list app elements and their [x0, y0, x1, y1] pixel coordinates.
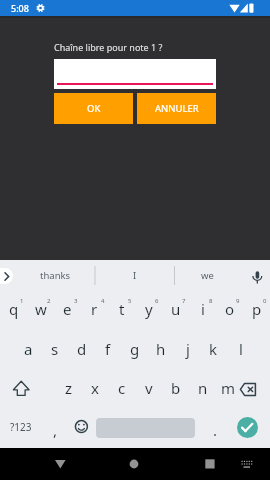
button[interactable]	[0, 268, 13, 284]
button[interactable]: w	[27, 290, 54, 328]
staticText: o	[225, 299, 235, 319]
staticText: z	[65, 378, 73, 398]
staticText: w	[35, 299, 47, 319]
button[interactable]: I	[120, 266, 149, 285]
button[interactable]: g	[121, 330, 148, 368]
staticText: a	[24, 339, 33, 359]
button[interactable]	[48, 452, 73, 476]
button[interactable]: k	[200, 330, 227, 368]
button[interactable]: v	[135, 369, 162, 407]
staticText: j	[186, 339, 190, 359]
button[interactable]: we	[192, 266, 222, 285]
button[interactable]: ANNULER	[137, 93, 216, 124]
staticText: i	[201, 299, 205, 319]
staticText: c	[118, 378, 126, 398]
staticText: .	[213, 420, 218, 438]
staticText: ?123	[10, 420, 32, 434]
button[interactable]: e	[54, 290, 81, 328]
staticText: Chaîne libre pour note 1 ?	[54, 41, 163, 53]
button[interactable]: a	[15, 330, 42, 368]
staticText: 4	[101, 297, 105, 305]
staticText: l	[239, 339, 243, 359]
staticText: d	[77, 339, 87, 359]
button[interactable]: p	[243, 290, 270, 328]
staticText: r	[91, 299, 98, 319]
staticText: OK	[87, 102, 101, 115]
button[interactable]	[122, 452, 147, 476]
button[interactable]: OK	[54, 93, 133, 124]
button[interactable]: u	[162, 290, 189, 328]
button[interactable]: m	[215, 369, 242, 407]
staticText: ,	[53, 420, 58, 438]
button[interactable]: r	[81, 290, 108, 328]
staticText: 7	[182, 297, 186, 305]
button[interactable]: i	[189, 290, 216, 328]
staticText: 3	[74, 297, 78, 305]
staticText: 0	[263, 297, 267, 305]
staticText: I	[133, 269, 137, 282]
button[interactable]: l	[227, 330, 254, 368]
button[interactable]: x	[81, 369, 108, 407]
staticText: 5:08	[11, 2, 29, 14]
staticText: 5	[128, 297, 132, 305]
button[interactable]: o	[216, 290, 243, 328]
staticText: 1	[20, 297, 24, 305]
staticText: s	[51, 339, 59, 359]
button[interactable]	[54, 59, 216, 89]
button[interactable]: n	[189, 369, 216, 407]
staticText: q	[9, 299, 19, 319]
staticText: h	[156, 339, 166, 359]
staticText: thanks	[40, 269, 71, 282]
staticText: y	[145, 299, 153, 319]
button[interactable]	[2, 372, 38, 406]
staticText: 6	[155, 297, 159, 305]
staticText: x	[91, 378, 99, 398]
staticText: e	[63, 299, 72, 319]
staticText: we	[201, 269, 214, 282]
staticText: n	[198, 378, 208, 398]
staticText: u	[171, 299, 181, 319]
button[interactable]	[198, 452, 223, 476]
button[interactable]: t	[108, 290, 135, 328]
button[interactable]: c	[108, 369, 135, 407]
button[interactable]: h	[147, 330, 174, 368]
button[interactable]: .	[207, 420, 223, 438]
button[interactable]: q	[0, 290, 27, 328]
button[interactable]: ?123	[6, 419, 36, 435]
button[interactable]: d	[68, 330, 95, 368]
button[interactable]: ,	[47, 420, 63, 438]
button[interactable]	[237, 417, 258, 438]
staticText: m	[221, 378, 236, 398]
staticText: v	[145, 378, 153, 398]
button[interactable]	[234, 452, 260, 476]
button[interactable]: b	[162, 369, 189, 407]
button[interactable]: s	[41, 330, 68, 368]
staticText: ANNULER	[155, 102, 199, 115]
staticText: 9	[236, 297, 240, 305]
staticText: t	[119, 299, 125, 319]
button[interactable]: thanks	[25, 266, 85, 285]
button[interactable]	[71, 416, 92, 437]
button[interactable]	[234, 372, 268, 406]
button[interactable]: z	[55, 369, 82, 407]
staticText: f	[105, 339, 111, 359]
staticText: 8	[209, 297, 213, 305]
button[interactable]: f	[94, 330, 121, 368]
button[interactable]	[246, 264, 268, 286]
button[interactable]: y	[135, 290, 162, 328]
staticText: 2	[47, 297, 51, 305]
staticText: b	[171, 378, 181, 398]
staticText: p	[252, 299, 262, 319]
button[interactable]: j	[174, 330, 201, 368]
staticText: g	[130, 339, 140, 359]
staticText: k	[209, 339, 218, 359]
